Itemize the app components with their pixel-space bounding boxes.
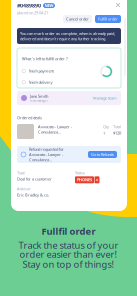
staticText: Total (113, 124, 121, 129)
staticText: order easier than ever! (19, 248, 117, 260)
staticText: PHONES (77, 177, 92, 182)
staticText: Go to Refunds (91, 152, 114, 157)
staticText: Ordered deals (17, 115, 42, 120)
button[interactable]: Close (115, 2, 121, 8)
staticText: Avvocato - Lawyer - (29, 152, 63, 157)
staticText: Jane Smith (30, 94, 48, 99)
staticText: Eric Bradley & co. (17, 192, 49, 198)
button[interactable]: Go to Refunds (88, 151, 117, 158)
button[interactable]: Cancel order (63, 15, 92, 23)
staticText: Qty (103, 124, 109, 129)
staticText: Deal for a customer (17, 176, 52, 182)
staticText: $120 (113, 130, 121, 136)
staticText: Type (17, 170, 25, 175)
staticText: 1 (103, 130, 105, 136)
staticText: Cancel order (66, 16, 89, 22)
staticText: Advisor (17, 186, 31, 191)
staticText: What's left to fulfill order ? (22, 56, 68, 61)
staticText: finish delivery (28, 80, 52, 85)
staticText: #0489890 (17, 2, 41, 9)
staticText: Team manager (30, 99, 48, 102)
staticText: × (95, 176, 98, 183)
button[interactable]: Manage team (93, 95, 117, 101)
staticText: NEW (44, 3, 53, 8)
staticText: finish payment (28, 68, 53, 74)
staticText: Status (75, 170, 85, 175)
staticText: Refund requested for (29, 146, 64, 152)
staticText: You can mark order as complete, when is … (20, 31, 115, 41)
staticText: Consulanza... (29, 157, 52, 162)
staticText: Stay on top of things! (22, 258, 114, 270)
button[interactable]: Fulfill order (95, 15, 121, 23)
staticText: Consulanza... (38, 129, 61, 135)
staticText: placed on 29.04.21 (17, 10, 48, 15)
staticText: Avvocato - Lawyer - (38, 124, 72, 129)
staticText: Fulfill order (98, 16, 118, 22)
staticText: Manage team (93, 95, 117, 101)
staticText: Track the status of your (18, 239, 118, 251)
staticText: Fullfil order (41, 225, 95, 237)
